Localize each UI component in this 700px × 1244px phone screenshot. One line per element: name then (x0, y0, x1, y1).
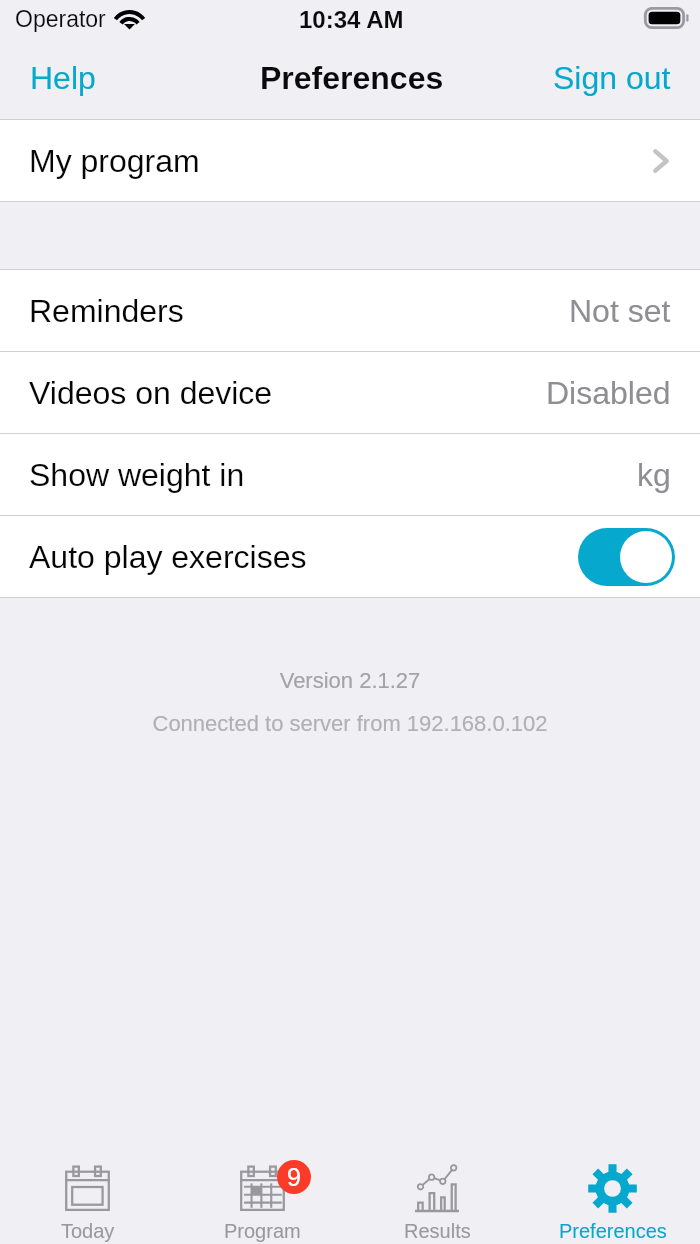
staticText: Sign out (553, 60, 671, 96)
staticText: Disabled (546, 375, 671, 411)
staticText: kg (637, 457, 671, 493)
staticText: Results (404, 1220, 471, 1242)
staticText: Today (61, 1220, 115, 1242)
button[interactable]: 9 (175, 1140, 350, 1244)
staticText: Connected to server from 192.168.0.102 (0, 711, 700, 736)
staticText: Operator (15, 6, 106, 32)
button[interactable]: Preferences (525, 1140, 700, 1244)
button[interactable]: Auto play exercises, on (578, 528, 675, 586)
staticText: My program (29, 143, 200, 179)
staticText: Program (224, 1220, 301, 1242)
staticText: Not set (569, 293, 671, 329)
staticText: Reminders (29, 293, 184, 329)
button[interactable]: My program (0, 120, 700, 201)
staticText: Show weight in (29, 457, 245, 493)
staticText: Preferences (260, 60, 444, 96)
button[interactable]: Show weight in (0, 434, 700, 515)
button[interactable]: Today (0, 1140, 175, 1244)
button[interactable]: Help (10, 52, 116, 108)
staticText: 9 (287, 1163, 301, 1191)
staticText: Auto play exercises (29, 539, 307, 575)
staticText: Help (30, 60, 96, 96)
staticText: Preferences (559, 1220, 667, 1242)
other: Open my program (651, 147, 671, 175)
button[interactable]: Sign out (533, 52, 691, 108)
staticText: 10:34 AM (299, 6, 404, 33)
staticText: Version 2.1.27 (0, 668, 700, 693)
button[interactable]: Videos on device (0, 352, 700, 433)
staticText: Videos on device (29, 375, 273, 411)
button[interactable]: Reminders (0, 270, 700, 351)
button[interactable]: Results (350, 1140, 525, 1244)
